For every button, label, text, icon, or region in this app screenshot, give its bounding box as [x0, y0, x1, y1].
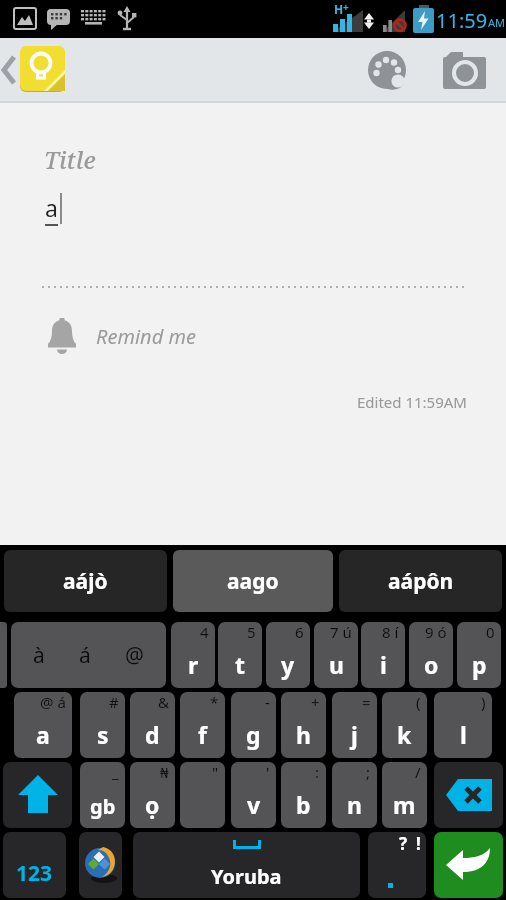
button[interactable]: @ á — [14, 692, 72, 758]
button[interactable] — [434, 832, 503, 898]
button[interactable]: aájò — [4, 550, 167, 612]
staticText: + — [311, 692, 320, 712]
staticText: ? ! — [399, 832, 421, 855]
staticText: s — [97, 719, 109, 750]
staticText: o — [424, 649, 439, 680]
button[interactable]: & — [130, 692, 175, 758]
button[interactable] — [367, 51, 409, 91]
staticText: _ — [112, 762, 119, 782]
button[interactable]: : — [281, 762, 326, 828]
button[interactable] — [3, 762, 72, 828]
staticText: 7 ú — [330, 622, 352, 642]
button[interactable]: * — [180, 692, 225, 758]
staticText: 8 í — [382, 622, 399, 642]
button[interactable] — [0, 55, 20, 85]
staticText: = — [362, 692, 371, 712]
staticText: Title — [44, 143, 96, 176]
staticText: 123 — [16, 859, 53, 888]
button[interactable]: ( — [382, 692, 427, 758]
staticText: H — [334, 1, 344, 17]
staticText: AM — [488, 15, 506, 30]
button[interactable]: = — [332, 692, 377, 758]
staticText: gb — [90, 793, 116, 820]
button[interactable]: ) — [434, 692, 492, 758]
button[interactable]: à — [11, 622, 166, 688]
button[interactable]: / — [382, 762, 427, 828]
staticText: " — [212, 762, 219, 782]
button[interactable]: aápôn — [339, 550, 502, 612]
staticText: m — [393, 789, 416, 820]
staticText: d — [145, 719, 160, 750]
staticText: aájò — [63, 567, 108, 596]
staticText: Remind me — [96, 323, 196, 350]
staticText: v — [247, 789, 261, 820]
staticText: 6 — [295, 622, 304, 642]
button[interactable]: " — [180, 762, 225, 828]
button[interactable]: Yoruba — [133, 832, 360, 898]
button[interactable]: 4 — [171, 622, 215, 688]
staticText: a — [45, 192, 58, 223]
staticText: @ — [125, 641, 144, 670]
button[interactable]: 6 — [266, 622, 310, 688]
staticText: n — [347, 789, 362, 820]
staticText: 0 — [486, 622, 495, 642]
staticText: @ á — [40, 692, 66, 712]
button[interactable]: ₦ — [130, 762, 175, 828]
button[interactable]: 5 — [218, 622, 262, 688]
button[interactable] — [443, 52, 487, 90]
button[interactable]: 123 — [3, 832, 66, 898]
staticText: aápôn — [388, 567, 454, 596]
staticText: 11:59 — [436, 7, 488, 34]
staticText: : — [315, 762, 320, 782]
button[interactable]: 0 — [457, 622, 501, 688]
staticText: Edited 11:59AM — [357, 392, 467, 412]
staticText: à — [33, 641, 45, 670]
staticText: a — [36, 719, 50, 750]
staticText: 9 ó — [425, 622, 447, 642]
staticText: g — [246, 719, 261, 750]
staticText: i — [380, 649, 387, 680]
button[interactable] — [20, 46, 65, 92]
staticText: * — [210, 692, 219, 712]
button[interactable] — [434, 762, 503, 828]
button[interactable]: aago — [173, 550, 333, 612]
staticText: y — [281, 649, 295, 680]
staticText: 4 — [200, 622, 209, 642]
staticText: ₦ — [160, 762, 169, 782]
staticText: r — [188, 649, 199, 680]
staticText: # — [109, 692, 119, 712]
staticText: aago — [227, 567, 279, 596]
button[interactable]: - — [231, 692, 276, 758]
button[interactable]: _ — [80, 762, 125, 828]
staticText: p — [472, 649, 487, 680]
button[interactable]: 9 ó — [409, 622, 453, 688]
staticText: l — [460, 719, 467, 750]
button[interactable]: # — [80, 692, 125, 758]
staticText: j — [351, 719, 358, 750]
button[interactable]: 8 í — [361, 622, 405, 688]
staticText: ) — [481, 692, 486, 712]
staticText: & — [158, 692, 169, 712]
staticText: h — [296, 719, 311, 750]
staticText: - — [265, 692, 270, 712]
button[interactable]: ? ! — [368, 832, 426, 898]
staticText: ọ — [145, 789, 160, 820]
staticText: á — [79, 641, 91, 670]
staticText: ' — [266, 762, 270, 782]
staticText: ( — [416, 692, 421, 712]
staticText: k — [397, 719, 412, 750]
staticText: t — [235, 649, 245, 680]
button[interactable]: 7 ú — [314, 622, 358, 688]
staticText: b — [296, 789, 311, 820]
button[interactable]: ' — [231, 762, 276, 828]
staticText: Yoruba — [211, 863, 282, 890]
staticText: + — [343, 0, 349, 14]
staticText: f — [198, 719, 207, 750]
staticText: u — [329, 649, 344, 680]
staticText: ; — [366, 762, 371, 782]
button[interactable]: + — [281, 692, 326, 758]
button[interactable]: Remind me — [46, 315, 306, 357]
staticText: / — [415, 762, 421, 782]
button[interactable]: ; — [332, 762, 377, 828]
button[interactable] — [79, 832, 122, 898]
